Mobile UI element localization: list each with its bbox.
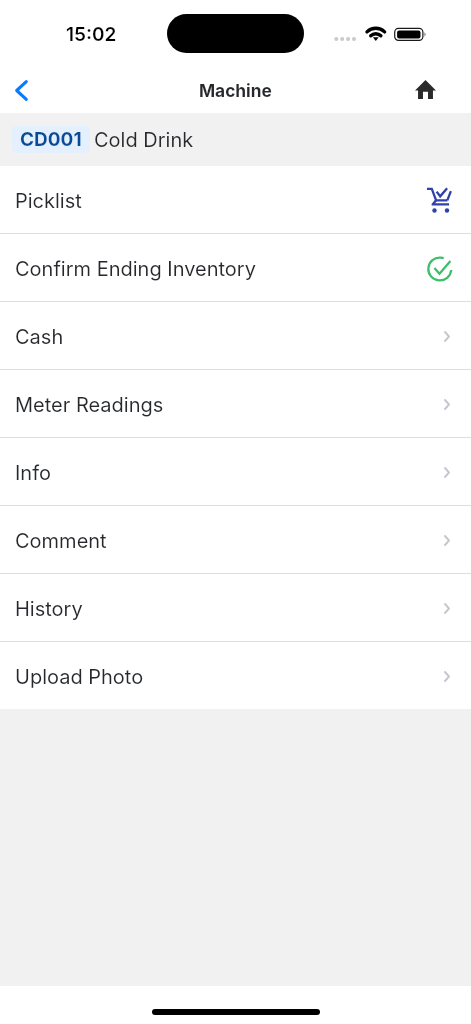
button[interactable]: Home	[407, 71, 443, 107]
button[interactable]: Info	[0, 438, 471, 505]
staticText: Cold Drink	[94, 128, 194, 152]
button[interactable]: Picklist	[0, 166, 471, 233]
staticText: Confirm Ending Inventory	[15, 257, 256, 281]
staticText: Upload Photo	[15, 665, 144, 689]
staticText: Machine	[199, 80, 272, 101]
button[interactable]: History	[0, 574, 471, 641]
staticText: History	[15, 597, 83, 621]
button[interactable]: Meter Readings	[0, 370, 471, 437]
staticText: Picklist	[15, 189, 82, 213]
button[interactable]: Back	[3, 73, 39, 109]
staticText: Comment	[15, 529, 107, 553]
button[interactable]: Cash	[0, 302, 471, 369]
button[interactable]: Confirm Ending Inventory	[0, 234, 471, 301]
staticText: Meter Readings	[15, 393, 164, 417]
button[interactable]: Comment	[0, 506, 471, 573]
button[interactable]: Upload Photo	[0, 642, 471, 709]
staticText: Cash	[15, 325, 64, 349]
staticText: CD001	[20, 128, 82, 151]
staticText: Info	[15, 461, 51, 485]
staticText: 15:02	[66, 23, 117, 46]
